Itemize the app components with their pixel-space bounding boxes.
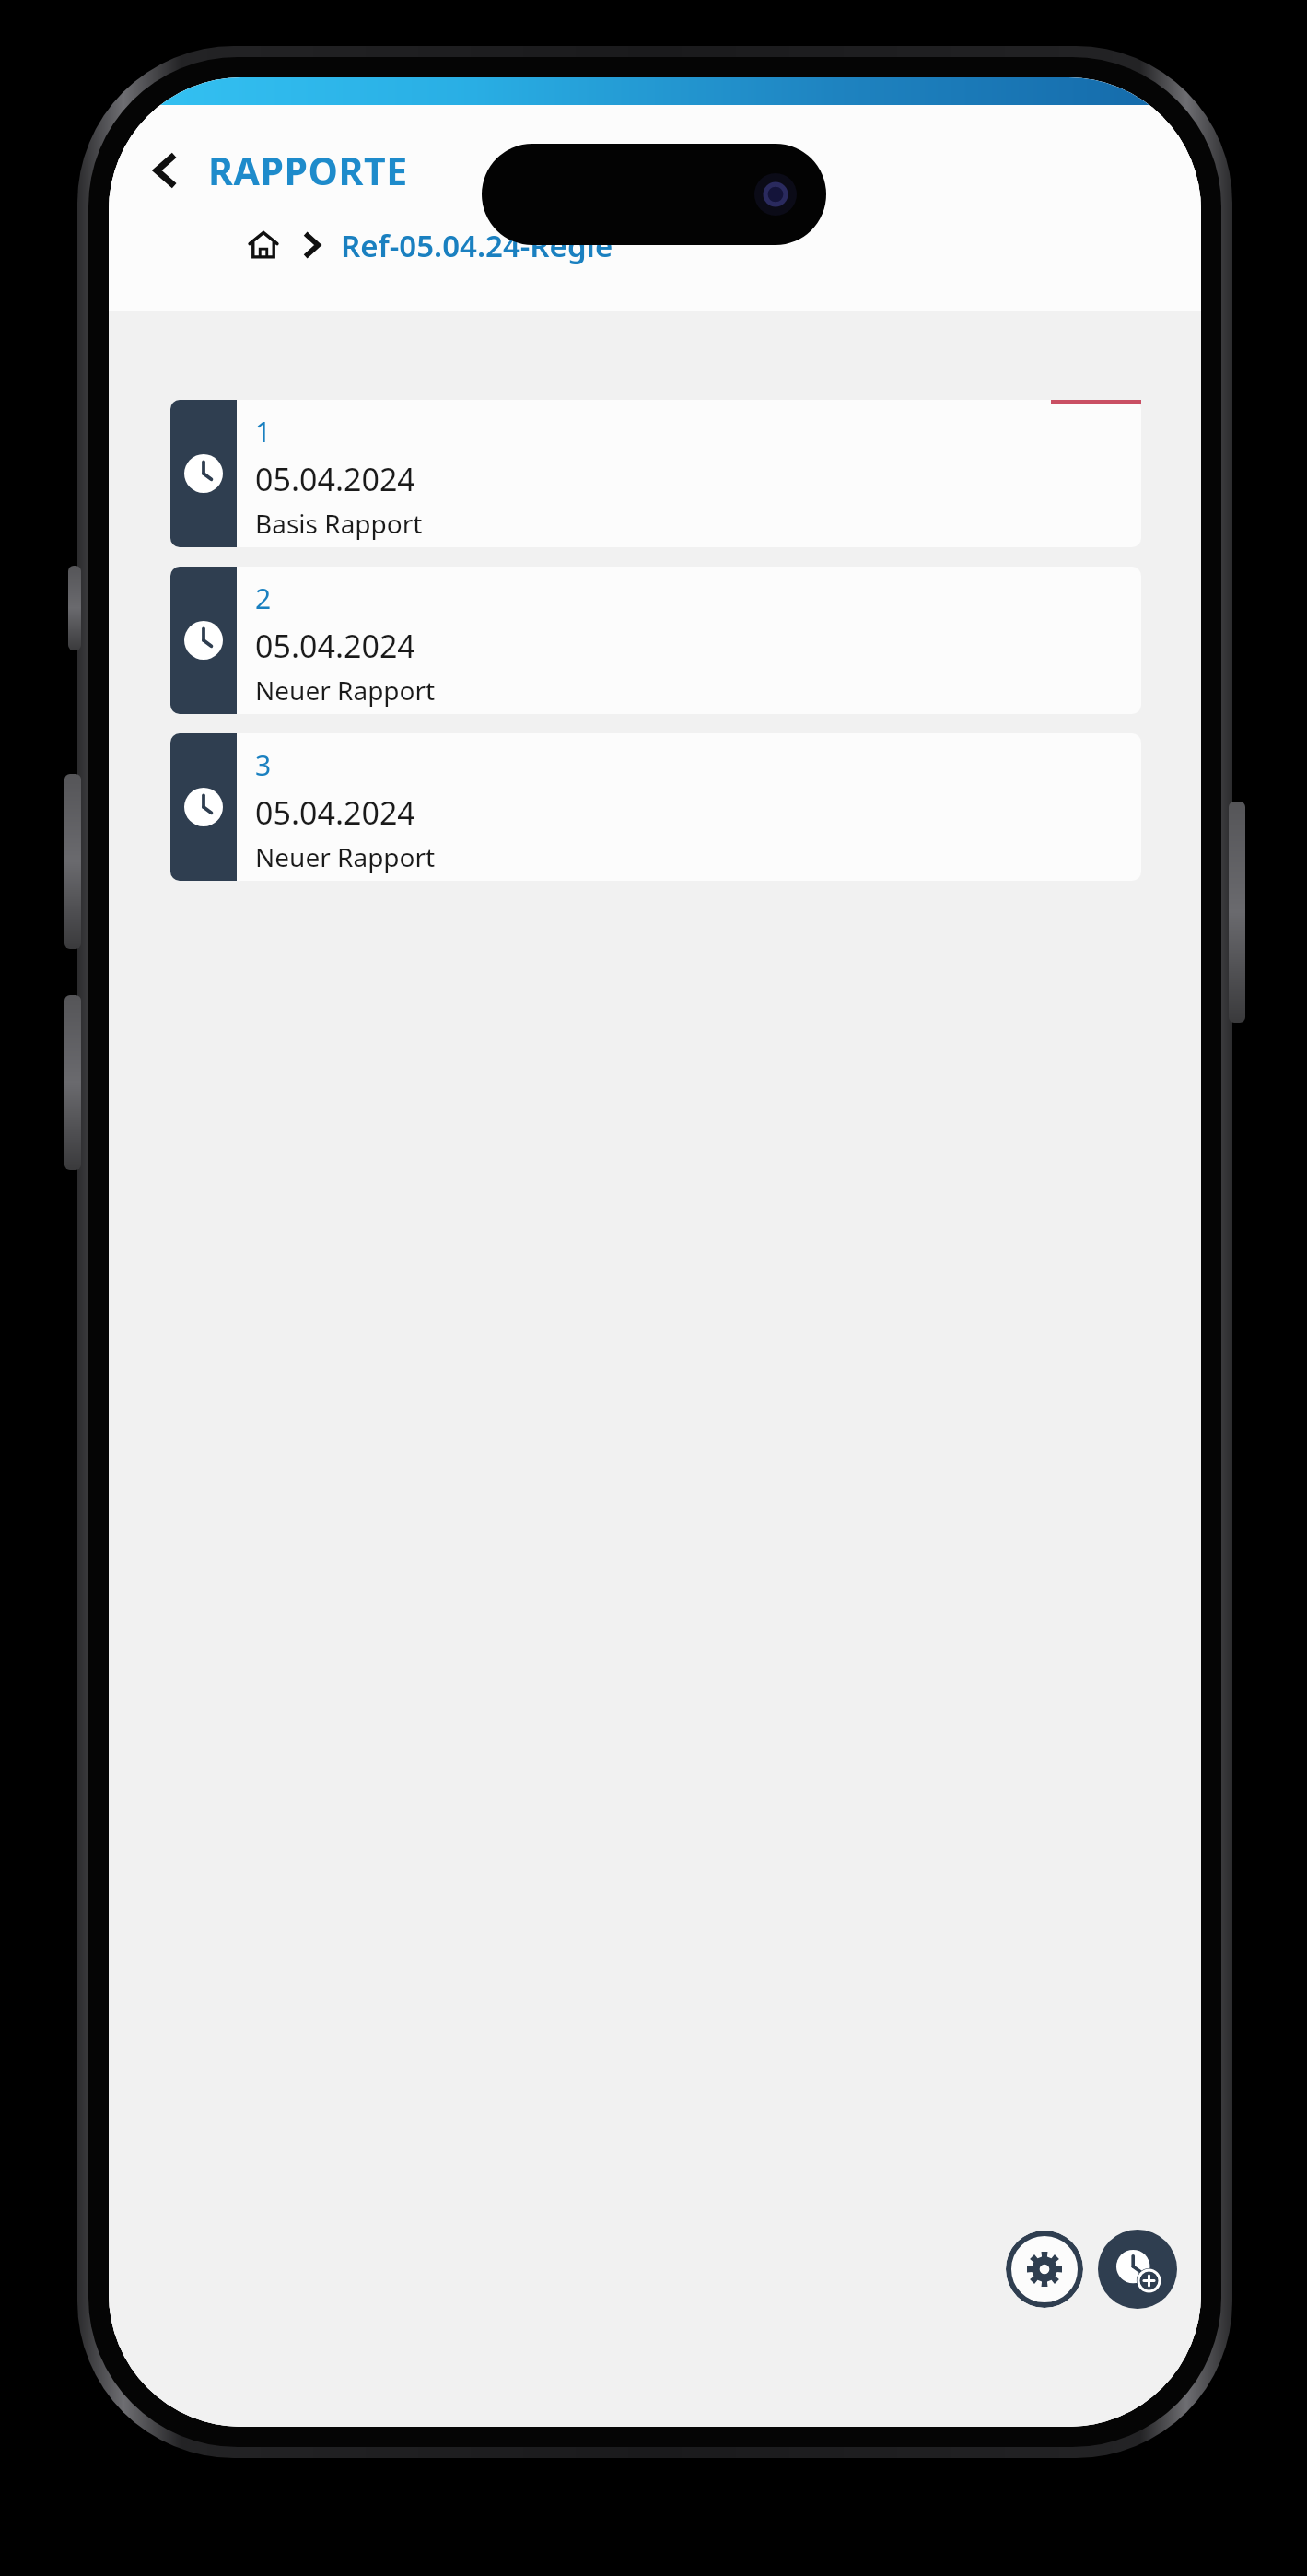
staticText: 05.04.2024	[255, 458, 415, 500]
staticText: Neuer Rapport	[255, 673, 436, 708]
staticText: 05.04.2024	[255, 625, 415, 667]
button[interactable]: Home	[239, 221, 287, 269]
staticText: 2	[255, 580, 272, 617]
button[interactable]: Back	[133, 138, 197, 203]
staticText: RAPPORTE	[208, 145, 408, 196]
button[interactable]: 1	[170, 400, 1141, 547]
button[interactable]: 2	[170, 567, 1141, 714]
button[interactable]: Settings	[1006, 2231, 1083, 2308]
staticText: Ref-05.04.24-Regie	[341, 225, 613, 266]
button[interactable]: 3	[170, 733, 1141, 881]
staticText: 3	[255, 746, 272, 784]
button[interactable]: Add report	[1098, 2230, 1177, 2309]
staticText: 1	[255, 413, 272, 451]
staticText: Basis Rapport	[255, 506, 423, 541]
button[interactable]: Ref-05.04.24-Regie	[341, 225, 613, 266]
staticText: 05.04.2024	[255, 791, 415, 834]
staticText: Neuer Rapport	[255, 839, 436, 874]
